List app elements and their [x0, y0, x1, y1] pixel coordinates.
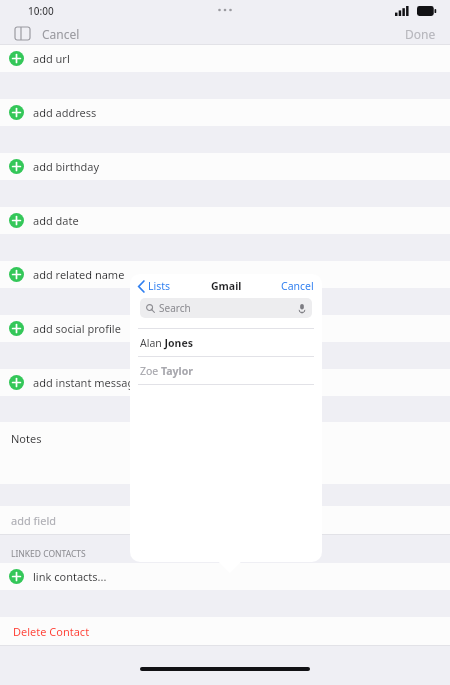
staticText: add date	[33, 213, 79, 228]
button[interactable]: add related name	[0, 261, 450, 288]
button[interactable]: Cancel	[38, 24, 84, 44]
button[interactable]: add instant message	[0, 369, 450, 396]
staticText: Cancel	[42, 26, 80, 42]
staticText: Zoe Taylor	[140, 364, 193, 378]
button[interactable]: Done	[401, 24, 440, 44]
staticText: Gmail	[211, 279, 242, 293]
button[interactable]: Lists	[136, 277, 173, 295]
staticText: 10:00	[28, 4, 54, 18]
staticText: Cancel	[281, 279, 314, 293]
staticText: add birthday	[33, 159, 100, 174]
staticText: Delete Contact	[13, 624, 90, 639]
staticText: Search	[159, 301, 191, 315]
button[interactable]: add field	[0, 506, 450, 534]
button[interactable]: add date	[0, 207, 450, 234]
staticText: Lists	[148, 279, 171, 293]
staticText: add url	[33, 51, 70, 66]
staticText: Alan Jones	[140, 336, 193, 350]
button[interactable]: add address	[0, 99, 450, 126]
button[interactable]: Sidebar	[10, 22, 34, 45]
button[interactable]: Delete Contact	[0, 617, 450, 645]
staticText: add field	[11, 513, 56, 528]
button[interactable]: Notes	[0, 422, 450, 484]
button[interactable]: Search	[140, 298, 312, 318]
button[interactable]: Cancel	[279, 277, 316, 295]
button[interactable]: add birthday	[0, 153, 450, 180]
staticText: add social profile	[33, 321, 121, 336]
staticText: Done	[405, 26, 436, 42]
staticText: add instant message	[33, 375, 141, 390]
button[interactable]: add social profile	[0, 315, 450, 342]
staticText: LINKED CONTACTS	[11, 548, 86, 560]
button[interactable]: link contacts...	[0, 563, 450, 590]
staticText: Notes	[11, 431, 42, 446]
staticText: add address	[33, 105, 97, 120]
button[interactable]: add url	[0, 45, 450, 72]
button[interactable]: Zoe Taylor	[130, 357, 322, 384]
staticText: link contacts...	[33, 569, 107, 584]
button[interactable]: Alan Jones	[130, 329, 322, 356]
staticText: add related name	[33, 267, 125, 282]
